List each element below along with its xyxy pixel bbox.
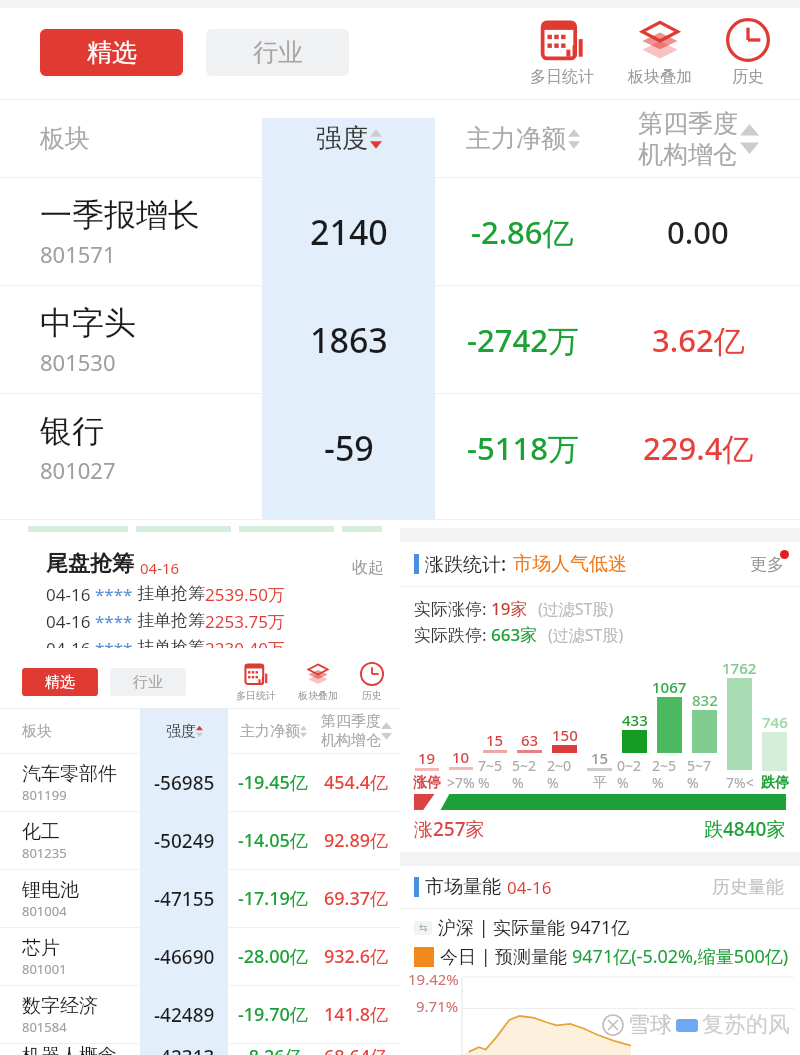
staticText: 801584: [22, 1018, 67, 1036]
staticText: 801001: [22, 960, 67, 978]
button[interactable]: 尾盘抢筹: [30, 542, 400, 652]
staticText: (过滤ST股): [538, 598, 614, 620]
button[interactable]: 中字头: [40, 303, 262, 377]
staticText: ⇆: [419, 922, 428, 934]
button[interactable]: 板块叠加: [296, 662, 340, 702]
staticText: 机器人概念: [22, 1044, 117, 1055]
staticText: -19.45亿: [238, 770, 308, 795]
staticText: 历史: [732, 67, 764, 87]
button[interactable]: 行业: [110, 668, 186, 696]
staticText: 第四季度: [321, 712, 381, 731]
staticText: 挂单抢筹: [137, 637, 205, 648]
staticText: 今日 | 预测量能: [440, 944, 572, 969]
staticText: 141.8亿: [324, 1002, 389, 1027]
staticText: 19: [418, 748, 436, 768]
staticText: 801235: [22, 844, 67, 862]
staticText: 746: [762, 712, 788, 732]
staticText: -42489: [154, 1002, 215, 1028]
button[interactable]: 主力净额: [228, 709, 318, 753]
staticText: 0~2%: [617, 756, 652, 792]
button[interactable]: 多日统计: [234, 662, 278, 702]
button[interactable]: 行业: [206, 29, 349, 76]
staticText: 04-16: [46, 583, 95, 606]
button[interactable]: 强度: [140, 709, 228, 753]
staticText: 2~0%: [547, 756, 582, 792]
button[interactable]: 多日统计: [528, 18, 596, 87]
staticText: 精选: [87, 37, 137, 68]
button[interactable]: 机器人概念: [22, 1044, 140, 1055]
staticText: 挂单抢筹: [137, 583, 205, 604]
staticText: 433: [622, 710, 648, 730]
staticText: 801027: [40, 455, 116, 485]
button[interactable]: 板块叠加: [626, 18, 694, 87]
staticText: 平: [593, 774, 607, 792]
staticText: 强度: [316, 122, 368, 155]
staticText: 19.42%: [408, 969, 459, 989]
staticText: 1067: [652, 677, 687, 697]
staticText: 历史量能: [712, 876, 784, 899]
button[interactable]: 银行: [40, 411, 262, 485]
button[interactable]: 数字经济: [22, 994, 140, 1036]
button[interactable]: 板块: [0, 709, 140, 753]
button[interactable]: 涨跌统计:: [400, 542, 800, 586]
staticText: ****: [95, 610, 137, 633]
staticText: 跌停: [761, 774, 789, 792]
staticText: 2230.40万: [205, 637, 285, 648]
staticText: 15: [486, 730, 504, 750]
staticText: 5~7%: [687, 756, 722, 792]
button[interactable]: 化工: [22, 820, 140, 862]
staticText: 一季报增长: [40, 195, 200, 235]
button[interactable]: 历史: [724, 18, 772, 87]
staticText: 19家: [491, 597, 528, 620]
staticText: 9.71%: [416, 996, 459, 1016]
staticText: 63: [521, 730, 539, 750]
staticText: 7%<: [726, 773, 754, 792]
staticText: 机构增仓: [321, 731, 381, 750]
button[interactable]: 强度: [262, 100, 435, 177]
staticText: 板块: [40, 123, 90, 154]
staticText: ****: [95, 583, 137, 606]
button[interactable]: 精选: [40, 29, 183, 76]
staticText: 0.00: [667, 211, 729, 253]
staticText: 实际涨停:: [414, 597, 491, 620]
button[interactable]: 一季报增长: [40, 195, 262, 269]
staticText: 精选: [45, 673, 75, 692]
staticText: -17.19亿: [238, 886, 308, 911]
staticText: 1762: [722, 658, 757, 678]
staticText: 第四季度: [638, 108, 738, 139]
staticText: -14.05亿: [238, 828, 308, 853]
button[interactable]: 历史: [358, 662, 386, 702]
staticText: 银行: [40, 411, 104, 451]
staticText: 锂电池: [22, 878, 79, 902]
button[interactable]: 主力净额: [435, 100, 610, 177]
staticText: 雪球: [628, 1011, 672, 1039]
staticText: 2253.75万: [205, 610, 285, 633]
staticText: 历史: [362, 689, 382, 702]
staticText: 中字头: [40, 303, 136, 343]
staticText: 更多: [750, 554, 784, 575]
staticText: 沪深 | 实际量能: [438, 915, 570, 940]
staticText: 主力净额: [466, 123, 566, 154]
button[interactable]: 市场量能: [400, 866, 800, 908]
staticText: -59: [324, 425, 374, 471]
staticText: 801530: [40, 347, 116, 377]
staticText: 收起: [352, 558, 384, 578]
button[interactable]: 板块: [0, 100, 262, 177]
staticText: 1863: [310, 317, 388, 363]
button[interactable]: 第四季度: [610, 100, 786, 177]
staticText: 汽车零部件: [22, 762, 117, 786]
button[interactable]: 汽车零部件: [22, 762, 140, 804]
staticText: 5~2%: [512, 756, 547, 792]
staticText: 市场量能: [425, 875, 501, 899]
staticText: -8.26亿: [243, 1044, 303, 1055]
button[interactable]: 锂电池: [22, 878, 140, 920]
staticText: (过滤ST股): [548, 624, 624, 646]
button[interactable]: 第四季度: [318, 709, 394, 753]
staticText: 强度: [166, 722, 196, 741]
staticText: 932.6亿: [324, 944, 389, 969]
button[interactable]: 精选: [22, 668, 98, 696]
button[interactable]: 芯片: [22, 936, 140, 978]
staticText: 3.62亿: [652, 319, 745, 361]
staticText: ****: [95, 637, 137, 648]
staticText: 跌4840家: [704, 816, 786, 842]
